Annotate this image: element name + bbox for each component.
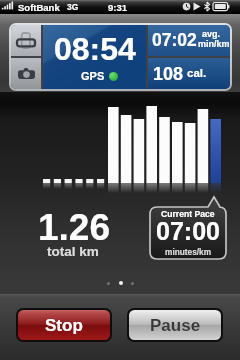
button[interactable]: 07:02 xyxy=(148,25,230,56)
button[interactable]: Stop xyxy=(18,310,110,340)
staticText: 07:02 xyxy=(152,30,197,50)
staticText: total km xyxy=(47,244,99,259)
button[interactable]: 08:54 xyxy=(43,25,146,89)
staticText: Current Pace xyxy=(161,209,215,219)
staticText: min/km xyxy=(198,39,230,49)
button[interactable]: Nike plus iPod xyxy=(11,25,41,56)
button[interactable]: Status bar xyxy=(0,0,240,14)
staticText: minutes/km xyxy=(165,247,212,256)
staticText: Pause xyxy=(150,316,201,335)
staticText: Stop xyxy=(45,316,83,335)
button[interactable]: Camera xyxy=(11,58,41,89)
button[interactable]: 108 xyxy=(148,58,230,89)
staticText: cal. xyxy=(187,67,207,80)
staticText: 108 xyxy=(153,64,184,84)
staticText: SoftBank xyxy=(18,2,60,13)
staticText: 07:00 xyxy=(156,217,220,245)
staticText: GPS xyxy=(81,70,105,82)
staticText: 9:31 xyxy=(108,2,128,13)
staticText: 1.26 xyxy=(38,207,111,248)
staticText: avg. xyxy=(202,29,221,39)
staticText: 08:54 xyxy=(54,31,136,67)
button[interactable]: Pause xyxy=(129,310,221,340)
button[interactable]: Current Pace xyxy=(149,196,227,260)
staticText: 3G xyxy=(67,2,79,11)
